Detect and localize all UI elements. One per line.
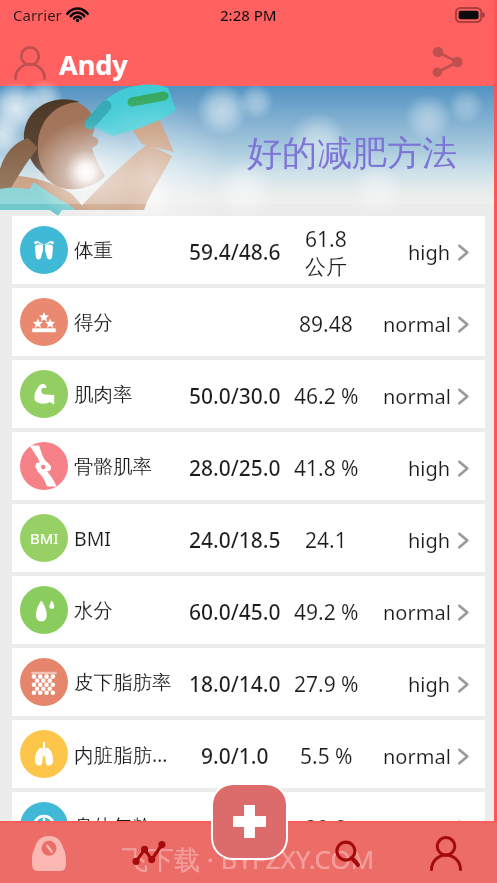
button[interactable]: Share (423, 38, 471, 86)
staticText: 46.2 % (294, 382, 359, 411)
staticText: 体重 (74, 238, 113, 263)
button[interactable]: 骨骼肌率 (12, 432, 485, 500)
button[interactable]: Trend (118, 828, 180, 878)
staticText: 89.48 (299, 310, 353, 339)
staticText: 61.8 (305, 225, 347, 254)
staticText: BMI (30, 528, 59, 548)
staticText: 59.4/48.6 (189, 238, 281, 267)
button[interactable]: Add (213, 785, 286, 858)
staticText: 身体年龄 (74, 814, 152, 839)
staticText: 5.5 % (300, 742, 353, 771)
staticText: 得分 (74, 310, 113, 335)
staticText: 骨骼肌率 (74, 454, 152, 479)
button[interactable]: 身体年龄 (12, 792, 485, 860)
staticText: 18.0/14.0 (189, 670, 281, 699)
staticText: 50.0/30.0 (189, 382, 281, 411)
staticText: 水分 (74, 598, 113, 623)
button[interactable]: 内脏脂肪… (12, 720, 485, 788)
button[interactable]: 皮下脂肪率 (12, 648, 485, 716)
button[interactable]: 体重 (12, 216, 485, 284)
staticText: 2:28 PM (220, 5, 277, 25)
staticText: 肌肉率 (74, 382, 133, 407)
staticText: high (408, 239, 451, 266)
button[interactable]: BMI (12, 504, 485, 572)
button[interactable]: 得分 (12, 288, 485, 356)
staticText: 60.0/45.0 (189, 598, 281, 627)
staticText: 32.8 (305, 814, 347, 843)
button[interactable]: 肌肉率 (12, 360, 485, 428)
staticText: high (408, 527, 451, 554)
staticText: 9.0/1.0 (201, 742, 269, 771)
button[interactable]: Profile (4, 37, 56, 89)
staticText: 49.2 % (294, 598, 359, 627)
staticText: 24.0/18.5 (189, 526, 281, 555)
staticText: 24.1 (305, 526, 347, 555)
staticText: 内脏脂肪… (74, 741, 168, 768)
staticText: normal (383, 311, 451, 338)
staticText: 公斤 (305, 254, 347, 280)
staticText: 飞下载 · BYFZXY.COM (122, 841, 375, 877)
button[interactable]: Search (319, 828, 377, 880)
staticText: normal (383, 383, 451, 410)
button[interactable]: Weight (18, 826, 80, 881)
staticText: Carrier (13, 5, 62, 25)
staticText: BMI (74, 525, 111, 552)
staticText: 好的减肥方法 (247, 131, 457, 175)
staticText: 27.9 % (294, 670, 359, 699)
staticText: 41.8 % (294, 454, 359, 483)
staticText: Andy (59, 46, 128, 83)
staticText: 皮下脂肪率 (74, 670, 172, 695)
staticText: high (408, 455, 451, 482)
button[interactable]: 水分 (12, 576, 485, 644)
staticText: normal (383, 743, 451, 770)
staticText: high (408, 671, 451, 698)
staticText: 28.0/25.0 (189, 454, 281, 483)
staticText: normal (383, 599, 451, 626)
button[interactable]: Profile (416, 826, 476, 881)
